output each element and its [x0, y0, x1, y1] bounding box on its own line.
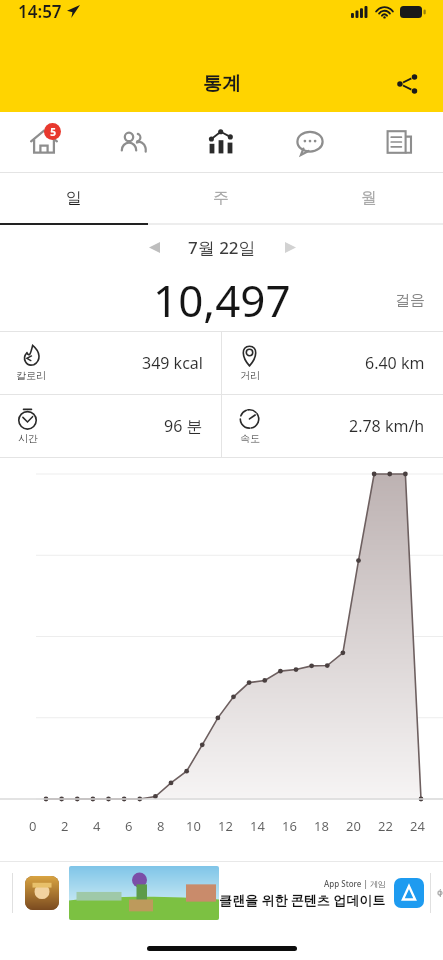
staticText: 10 — [186, 817, 201, 835]
staticText: 349 kcal — [142, 352, 203, 374]
staticText: 일 — [66, 188, 82, 208]
staticText: 속도 — [240, 432, 260, 445]
staticText: 8 — [157, 817, 165, 835]
staticText: 0 — [29, 817, 37, 835]
staticText: 5 — [50, 125, 56, 139]
button[interactable]: 칼로리 — [0, 332, 221, 394]
button[interactable]: 거리 — [222, 332, 443, 394]
staticText: 12 — [218, 817, 233, 835]
staticText: 20 — [346, 817, 361, 835]
button[interactable]: Share — [385, 62, 429, 106]
button[interactable]: News — [354, 112, 443, 172]
button[interactable]: Chat — [265, 112, 354, 172]
button[interactable]: Next day — [272, 229, 308, 265]
staticText: 4 — [93, 817, 101, 835]
staticText: 2.78 km/h — [349, 415, 425, 437]
staticText: 24 — [410, 817, 425, 835]
button[interactable]: 월 — [295, 173, 443, 223]
staticText: 2 — [61, 817, 69, 835]
staticText: 걸음 — [395, 291, 425, 310]
button[interactable]: Home — [0, 112, 88, 172]
staticText: i — [439, 886, 442, 900]
staticText: 통계 — [203, 72, 241, 96]
button[interactable]: 속도 — [222, 395, 443, 457]
staticText: 96 분 — [164, 415, 203, 437]
staticText: 22 — [378, 817, 393, 835]
staticText: 칼로리 — [16, 369, 46, 382]
staticText: 7월 22일 — [188, 236, 256, 259]
button[interactable]: 주 — [147, 173, 295, 223]
button[interactable]: App Store | 게임 — [0, 862, 443, 924]
staticText: 월 — [361, 188, 377, 208]
button[interactable]: Ad info — [437, 882, 443, 904]
staticText: 6.40 km — [365, 352, 425, 374]
staticText: 16 — [282, 817, 297, 835]
staticText: 클랜을 위한 콘텐츠 업데이트 — [219, 891, 386, 909]
staticText: 6 — [125, 817, 133, 835]
button[interactable]: 일 — [0, 173, 147, 223]
staticText: 시간 — [18, 432, 38, 445]
staticText: 거리 — [240, 369, 260, 382]
button[interactable]: Statistics — [176, 112, 265, 172]
staticText: 14 — [250, 817, 265, 835]
staticText: App Store | 게임 — [324, 878, 386, 889]
button[interactable]: 시간 — [0, 395, 221, 457]
staticText: 14:57 — [18, 0, 62, 23]
staticText: 18 — [314, 817, 329, 835]
staticText: 10,497 — [153, 270, 291, 330]
staticText: 주 — [213, 188, 229, 208]
button[interactable]: Previous day — [136, 229, 172, 265]
button[interactable]: Friends — [88, 112, 176, 172]
